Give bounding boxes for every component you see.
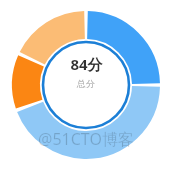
staticText: 总分	[77, 78, 95, 89]
staticText: 84分	[70, 54, 103, 74]
staticText: @51CTO博客	[38, 128, 134, 150]
button[interactable]: Score donut chart, total score 84	[0, 0, 172, 169]
